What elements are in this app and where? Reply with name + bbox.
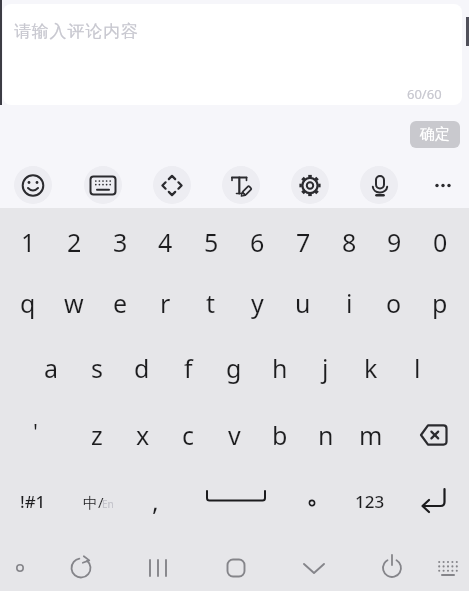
button[interactable]: 4	[143, 222, 187, 262]
staticText: v	[228, 418, 241, 452]
staticText: n	[318, 418, 334, 452]
staticText: a	[44, 351, 59, 385]
button[interactable]: e	[98, 283, 142, 323]
staticText: t	[206, 286, 216, 320]
button[interactable]: s	[75, 348, 119, 388]
button[interactable]: p	[418, 283, 462, 323]
button[interactable]	[222, 166, 260, 204]
button[interactable]: g	[212, 348, 256, 388]
staticText: f	[184, 351, 193, 385]
staticText: 3	[113, 225, 128, 259]
staticText: z	[91, 418, 103, 452]
staticText: q	[20, 286, 36, 320]
button[interactable]	[360, 166, 398, 204]
button[interactable]: f	[166, 348, 210, 388]
button[interactable]	[202, 478, 268, 520]
staticText: 中/	[83, 492, 104, 512]
staticText: En	[102, 497, 114, 511]
button[interactable]: z	[75, 415, 119, 455]
staticText: b	[272, 418, 288, 452]
button[interactable]: j	[303, 348, 347, 388]
button[interactable]: u	[281, 283, 325, 323]
staticText: l	[414, 351, 421, 385]
staticText: 5	[204, 225, 219, 259]
button[interactable]: t	[189, 283, 233, 323]
staticText: u	[295, 286, 311, 320]
button[interactable]: b	[258, 415, 302, 455]
button[interactable]: i	[327, 283, 371, 323]
staticText: g	[226, 351, 242, 385]
button[interactable]	[291, 166, 329, 204]
staticText: o	[386, 286, 402, 320]
button[interactable]: v	[212, 415, 256, 455]
button[interactable]	[292, 481, 332, 521]
button[interactable]: 9	[372, 222, 416, 262]
button[interactable]: 123	[348, 481, 392, 521]
button[interactable]	[412, 415, 456, 455]
staticText: 2	[67, 225, 82, 259]
button[interactable]: n	[304, 415, 348, 455]
button[interactable]: l	[395, 348, 439, 388]
button[interactable]: d	[120, 348, 164, 388]
button[interactable]: 3	[98, 222, 142, 262]
staticText: y	[251, 286, 264, 320]
button[interactable]: 2	[52, 222, 96, 262]
button[interactable]: 6	[235, 222, 279, 262]
staticText: !#1	[20, 490, 46, 513]
staticText: p	[432, 286, 448, 320]
staticText: 4	[158, 225, 173, 259]
staticText: 7	[296, 225, 311, 259]
button[interactable]: q	[6, 283, 50, 323]
button[interactable]: 请输入评论内容	[3, 4, 462, 105]
button[interactable]: 5	[189, 222, 233, 262]
staticText: m	[359, 418, 383, 452]
staticText: 请输入评论内容	[14, 21, 139, 42]
staticText: c	[182, 418, 195, 452]
staticText: s	[91, 351, 103, 385]
button[interactable]: 7	[281, 222, 325, 262]
staticText: i	[346, 286, 353, 320]
staticText: 0	[433, 225, 448, 259]
staticText: r	[160, 286, 171, 320]
button[interactable]: y	[235, 283, 279, 323]
staticText: e	[113, 286, 128, 320]
button[interactable]: k	[349, 348, 393, 388]
button[interactable]: 8	[327, 222, 371, 262]
button[interactable]: c	[166, 415, 210, 455]
staticText: k	[364, 351, 378, 385]
staticText: 60/60	[407, 85, 442, 103]
button[interactable]: o	[372, 283, 416, 323]
staticText: 8	[342, 225, 357, 259]
button[interactable]: '	[13, 411, 57, 451]
button[interactable]: 确定	[410, 121, 460, 148]
button[interactable]	[153, 166, 191, 204]
staticText: w	[64, 286, 84, 320]
staticText: 1	[21, 225, 36, 259]
button[interactable]: x	[121, 415, 165, 455]
staticText: 确定	[420, 125, 450, 144]
staticText: 9	[387, 225, 402, 259]
button[interactable]	[424, 166, 462, 204]
button[interactable]: w	[52, 283, 96, 323]
button[interactable]: h	[258, 348, 302, 388]
button[interactable]: r	[143, 283, 187, 323]
button[interactable]	[14, 166, 52, 204]
button[interactable]: !#1	[11, 481, 55, 521]
staticText: d	[134, 351, 150, 385]
staticText: ,	[152, 484, 159, 518]
staticText: 123	[355, 490, 385, 513]
button[interactable]	[84, 166, 122, 204]
staticText: x	[136, 418, 150, 452]
button[interactable]: 0	[418, 222, 462, 262]
button[interactable]: ,	[133, 481, 177, 521]
button[interactable]	[411, 478, 455, 520]
staticText: j	[322, 351, 329, 385]
staticText: 6	[250, 225, 265, 259]
staticText: '	[33, 416, 38, 446]
staticText: h	[272, 351, 288, 385]
button[interactable]	[72, 481, 120, 521]
button[interactable]: 1	[6, 222, 50, 262]
button[interactable]: a	[29, 348, 73, 388]
button[interactable]: m	[349, 415, 393, 455]
